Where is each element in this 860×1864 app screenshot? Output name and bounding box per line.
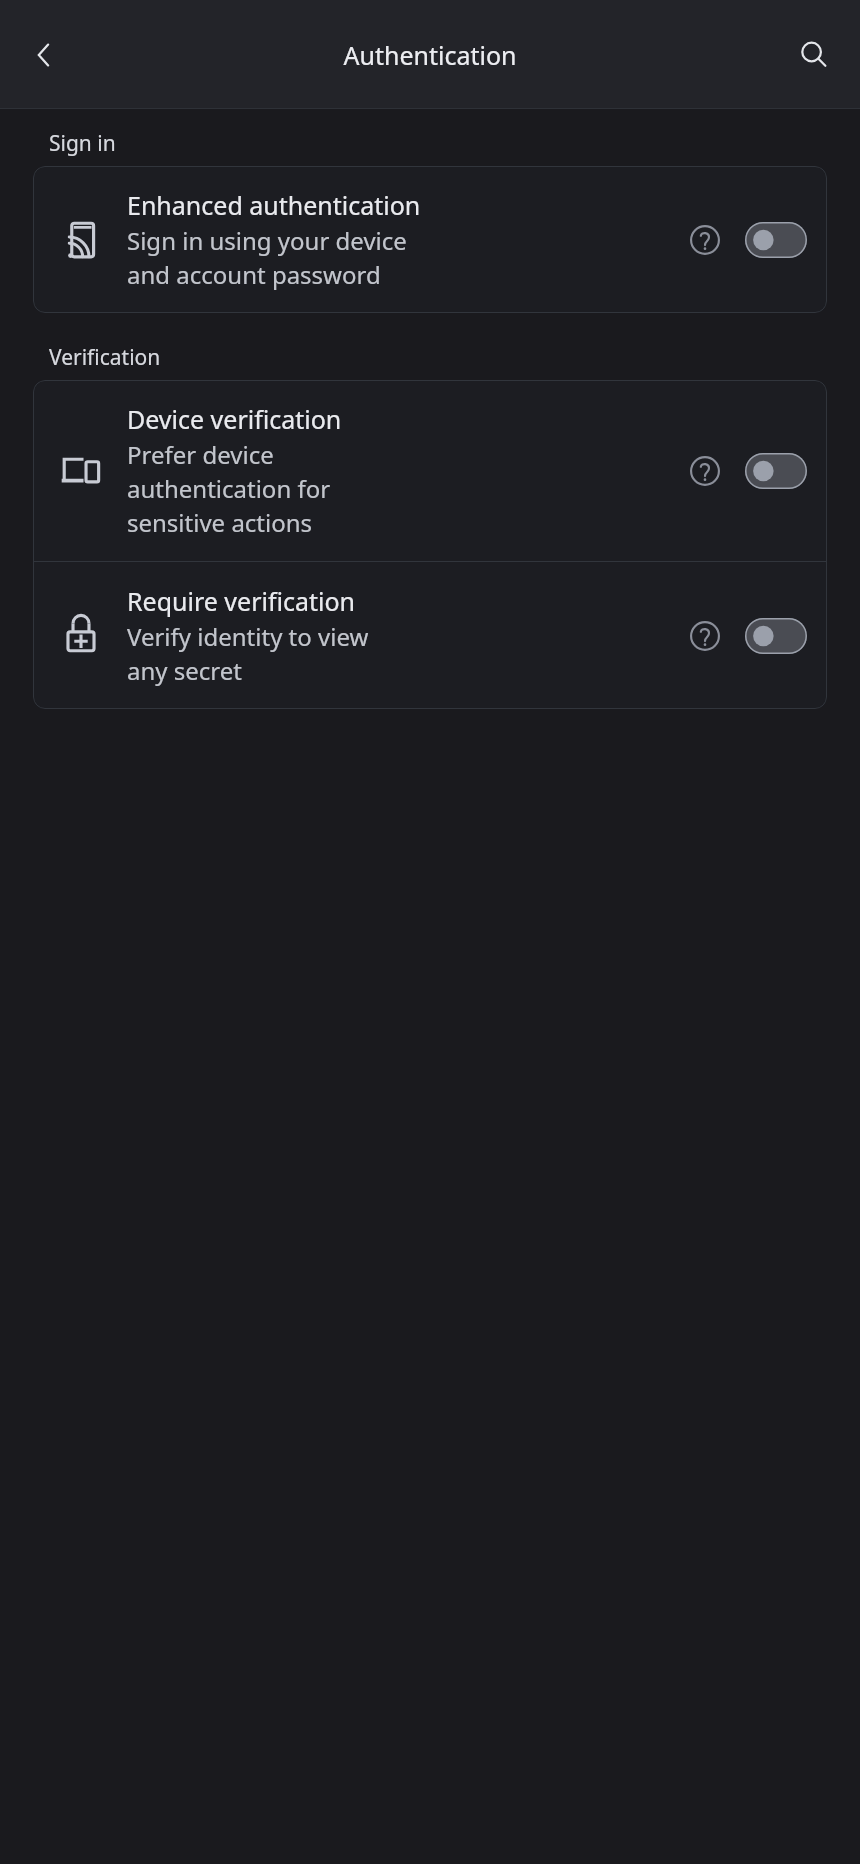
button[interactable]: Device verification <box>33 380 827 561</box>
button[interactable]: Help <box>681 447 729 495</box>
button[interactable]: Search <box>786 27 842 83</box>
button[interactable]: Toggle <box>745 222 807 258</box>
button[interactable]: Help <box>681 216 729 264</box>
staticText: Sign in using your device and account pa… <box>127 224 407 291</box>
staticText: Verify identity to view any secret <box>127 620 369 687</box>
button[interactable]: Help <box>681 612 729 660</box>
button[interactable]: Back <box>16 27 72 83</box>
button[interactable]: Toggle <box>745 618 807 654</box>
staticText: Device verification <box>127 402 342 436</box>
button[interactable]: Require verification <box>33 562 827 709</box>
staticText: Authentication <box>343 38 517 72</box>
staticText: Require verification <box>127 584 356 618</box>
button[interactable]: Toggle <box>745 453 807 489</box>
button[interactable]: Enhanced authentication <box>33 166 827 313</box>
staticText: Sign in <box>49 129 116 158</box>
staticText: Verification <box>49 343 161 372</box>
staticText: Enhanced authentication <box>127 188 421 222</box>
staticText: Prefer device authentication for sensiti… <box>127 438 331 539</box>
